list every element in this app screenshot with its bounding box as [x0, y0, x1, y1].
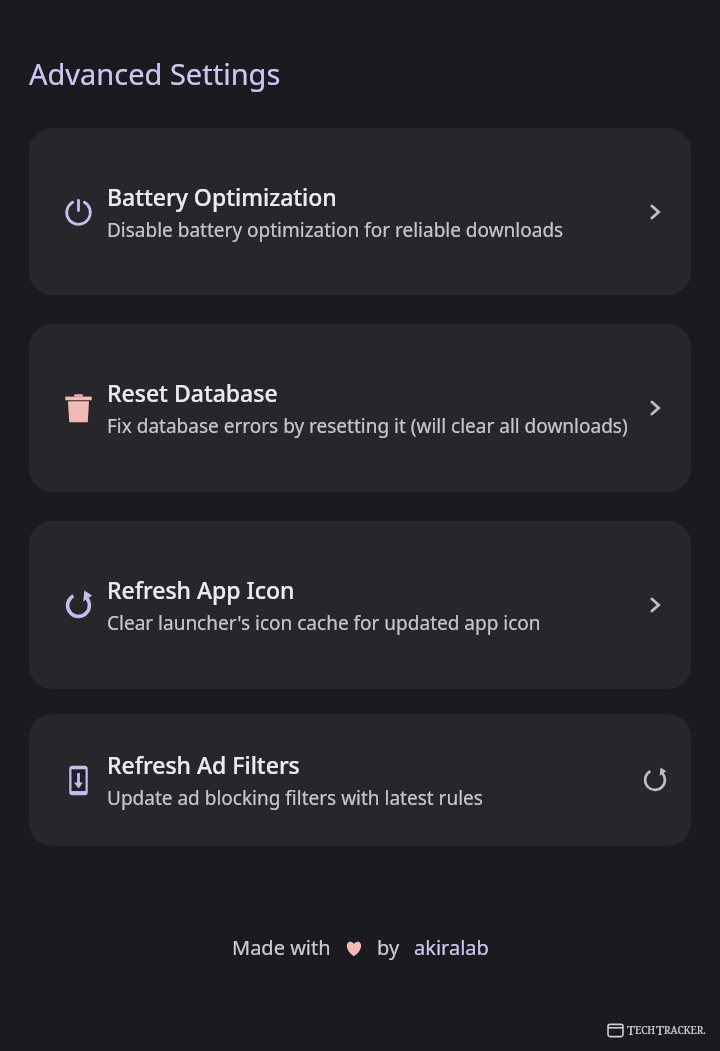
staticText: Disable battery optimization for reliabl… [107, 217, 564, 243]
staticText: Refresh App Icon [107, 574, 295, 605]
staticText: Fix database errors by resetting it (wil… [107, 413, 628, 439]
staticText: Refresh Ad Filters [107, 749, 300, 780]
button[interactable]: Open refresh app icon [633, 583, 677, 627]
staticText: Battery Optimization [107, 181, 337, 212]
button[interactable]: Refresh App Icon [29, 521, 691, 689]
button[interactable]: Battery Optimization [29, 128, 691, 295]
staticText: Clear launcher's icon cache for updated … [107, 610, 541, 636]
button[interactable]: Open battery optimization [633, 190, 677, 234]
staticText: Advanced Settings [29, 54, 281, 93]
staticText: T [627, 1021, 635, 1039]
staticText: by [377, 934, 400, 961]
staticText: Reset Database [107, 377, 278, 408]
button[interactable]: Reset Database [29, 324, 691, 492]
staticText: ECH [635, 1023, 656, 1037]
staticText: Made with [232, 934, 331, 961]
staticText: akiralab [414, 934, 489, 961]
button[interactable]: Refresh ad filters [633, 758, 677, 802]
staticText: T [656, 1021, 664, 1039]
staticText: RACKER. [664, 1023, 706, 1037]
staticText: Update ad blocking filters with latest r… [107, 785, 483, 811]
button[interactable]: Open reset database [633, 386, 677, 430]
button[interactable]: Refresh Ad Filters [29, 714, 691, 846]
